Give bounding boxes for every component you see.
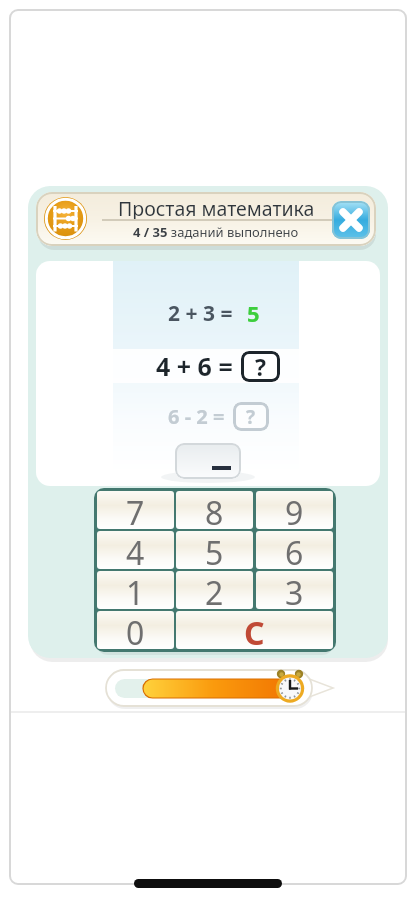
staticText: 7 — [126, 491, 145, 529]
staticText: 5 — [247, 298, 260, 328]
staticText: 2 — [205, 571, 224, 609]
staticText: C — [244, 611, 265, 649]
button[interactable]: 7 — [97, 491, 174, 529]
staticText: ? — [246, 404, 256, 430]
button[interactable]: 8 — [176, 491, 253, 529]
staticText: 2 + 3 = — [168, 299, 233, 328]
staticText: 6 — [285, 531, 304, 569]
button[interactable]: 9 — [256, 491, 333, 529]
button[interactable]: 3 — [256, 571, 333, 609]
staticText: Простая математика — [118, 195, 315, 219]
staticText: ? — [255, 351, 266, 382]
staticText: 5 — [205, 531, 224, 569]
staticText: 1 — [126, 571, 145, 609]
staticText: 4 + 6 = — [156, 349, 233, 383]
button[interactable]: 5 — [176, 531, 253, 569]
staticText: 4 / 35 заданий выполнено — [133, 223, 299, 241]
staticText: 8 — [205, 491, 224, 529]
staticText: 9 — [285, 491, 304, 529]
button[interactable]: 2 — [176, 571, 253, 609]
staticText: 3 — [285, 571, 304, 609]
button[interactable] — [332, 201, 370, 239]
button[interactable]: 1 — [97, 571, 174, 609]
button[interactable]: 6 — [256, 531, 333, 569]
staticText: 6 - 2 = — [168, 403, 225, 430]
staticText: 0 — [126, 611, 145, 649]
button[interactable] — [44, 197, 87, 240]
staticText: 4 — [126, 531, 145, 569]
button[interactable]: C — [176, 611, 333, 649]
button[interactable]: 0 — [97, 611, 174, 649]
button[interactable]: 4 — [97, 531, 174, 569]
